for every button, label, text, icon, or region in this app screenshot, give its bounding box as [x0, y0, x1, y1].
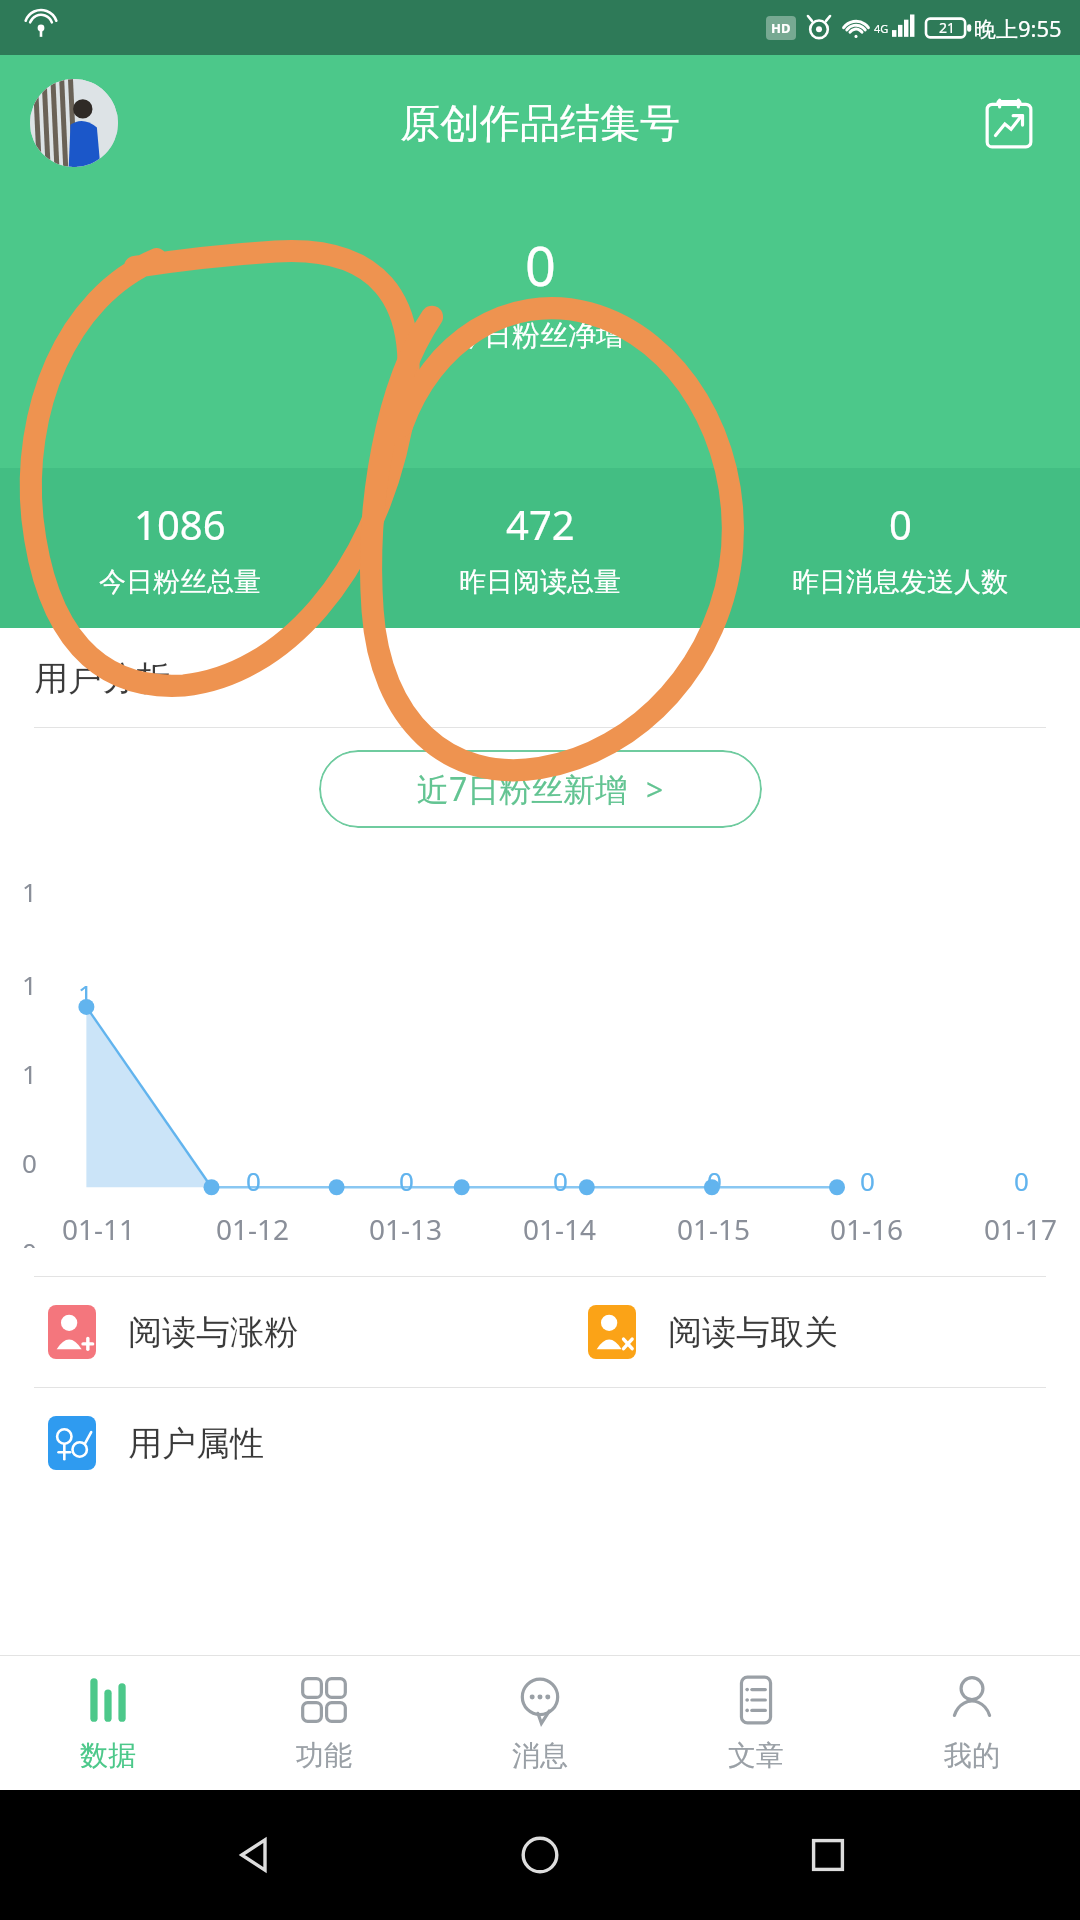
staticText: 21 — [939, 18, 956, 37]
staticText: 0 — [22, 1234, 37, 1248]
staticText: 晚上9:55 — [974, 13, 1062, 43]
button[interactable]: 用户属性 — [48, 1388, 540, 1498]
staticText: 0 — [1014, 1163, 1029, 1198]
staticText: 01-16 — [830, 1210, 904, 1248]
staticText: 0 — [525, 228, 556, 302]
button[interactable]: 文章 — [648, 1656, 864, 1790]
button[interactable]: 消息 — [432, 1656, 648, 1790]
button[interactable]: 数据 — [0, 1656, 216, 1790]
button[interactable]: Recents — [793, 1820, 863, 1890]
staticText: 1 — [22, 967, 37, 1002]
staticText: 1 — [22, 1056, 37, 1091]
button[interactable]: Back — [218, 1820, 288, 1890]
button[interactable]: 近7日粉丝新增 — [319, 750, 762, 828]
staticText: 原创作品结集号 — [400, 98, 680, 148]
staticText: 01-11 — [62, 1210, 136, 1248]
button[interactable]: Statistics report — [974, 88, 1044, 158]
button[interactable]: 阅读与涨粉 — [48, 1277, 540, 1387]
staticText: 用户属性 — [128, 1422, 264, 1465]
staticText: 1086 — [134, 497, 226, 551]
staticText: 今日粉丝净增 — [456, 318, 624, 353]
staticText: 01-15 — [677, 1210, 751, 1248]
staticText: 0 — [860, 1163, 875, 1198]
staticText: 472 — [506, 497, 575, 551]
staticText: 01-17 — [984, 1210, 1058, 1248]
staticText — [96, 1163, 103, 1198]
button[interactable]: Profile avatar — [30, 79, 118, 167]
button[interactable]: 我的 — [864, 1656, 1080, 1790]
staticText: 0 — [246, 1163, 261, 1198]
staticText: 阅读与涨粉 — [128, 1311, 298, 1354]
staticText: 0 — [553, 1163, 568, 1198]
button[interactable]: 功能 — [216, 1656, 432, 1790]
staticText: 我的 — [944, 1738, 1000, 1773]
staticText: 0 — [889, 497, 912, 551]
button[interactable]: Home — [505, 1820, 575, 1890]
staticText: 昨日阅读总量 — [459, 565, 621, 599]
staticText: 0 — [399, 1163, 414, 1198]
staticText: 01-14 — [523, 1210, 597, 1248]
staticText: 1 — [22, 874, 37, 909]
staticText: 数据 — [80, 1738, 136, 1773]
button[interactable]: 472 — [360, 468, 720, 628]
button[interactable]: 0 — [720, 468, 1080, 628]
staticText: HD — [771, 19, 791, 37]
staticText: 阅读与取关 — [668, 1311, 838, 1354]
staticText: 功能 — [296, 1738, 352, 1773]
staticText: 昨日消息发送人数 — [792, 565, 1008, 599]
staticText: 1 — [78, 976, 93, 1011]
staticText: 0 — [707, 1163, 722, 1198]
staticText: 0 — [22, 1145, 37, 1180]
button[interactable]: 1086 — [0, 468, 360, 628]
staticText: 今日粉丝总量 — [99, 565, 261, 599]
staticText: 消息 — [512, 1738, 568, 1773]
staticText: 近7日粉丝新增 — [417, 767, 628, 811]
staticText: 01-13 — [369, 1210, 443, 1248]
button[interactable]: 阅读与取关 — [588, 1277, 1080, 1387]
staticText: > — [646, 769, 664, 810]
staticText: 4G — [874, 21, 889, 36]
staticText: 01-12 — [216, 1210, 290, 1248]
staticText: 用户分析 — [34, 657, 170, 700]
staticText: 文章 — [728, 1738, 784, 1773]
